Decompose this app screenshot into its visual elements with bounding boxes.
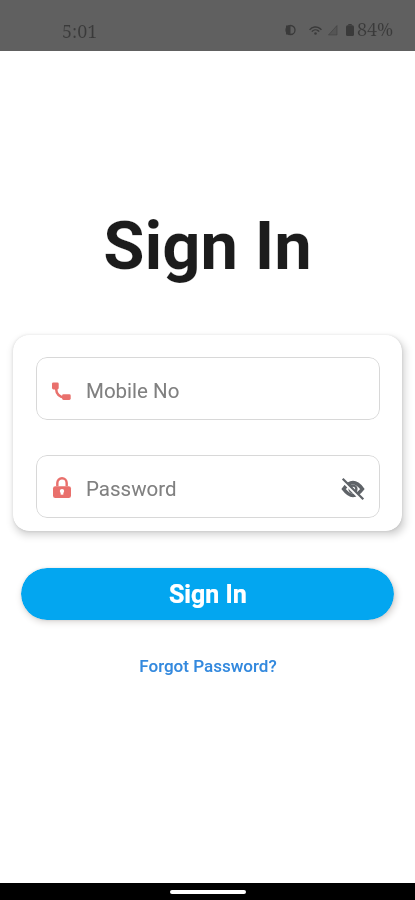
staticText: Sign In [0,207,415,286]
button[interactable]: Sign In [21,568,394,620]
staticText: Forgot Password? [139,656,277,676]
staticText: 84% [357,17,394,42]
button[interactable]: Password [36,455,380,518]
staticText: 5:01 [62,19,98,44]
button[interactable]: Mobile No [36,357,380,420]
button[interactable]: Forgot Password? [131,650,285,682]
staticText: Mobile No [86,379,180,403]
staticText: Password [86,477,177,501]
staticText: Sign In [169,580,247,609]
button[interactable]: Show password [331,467,375,511]
